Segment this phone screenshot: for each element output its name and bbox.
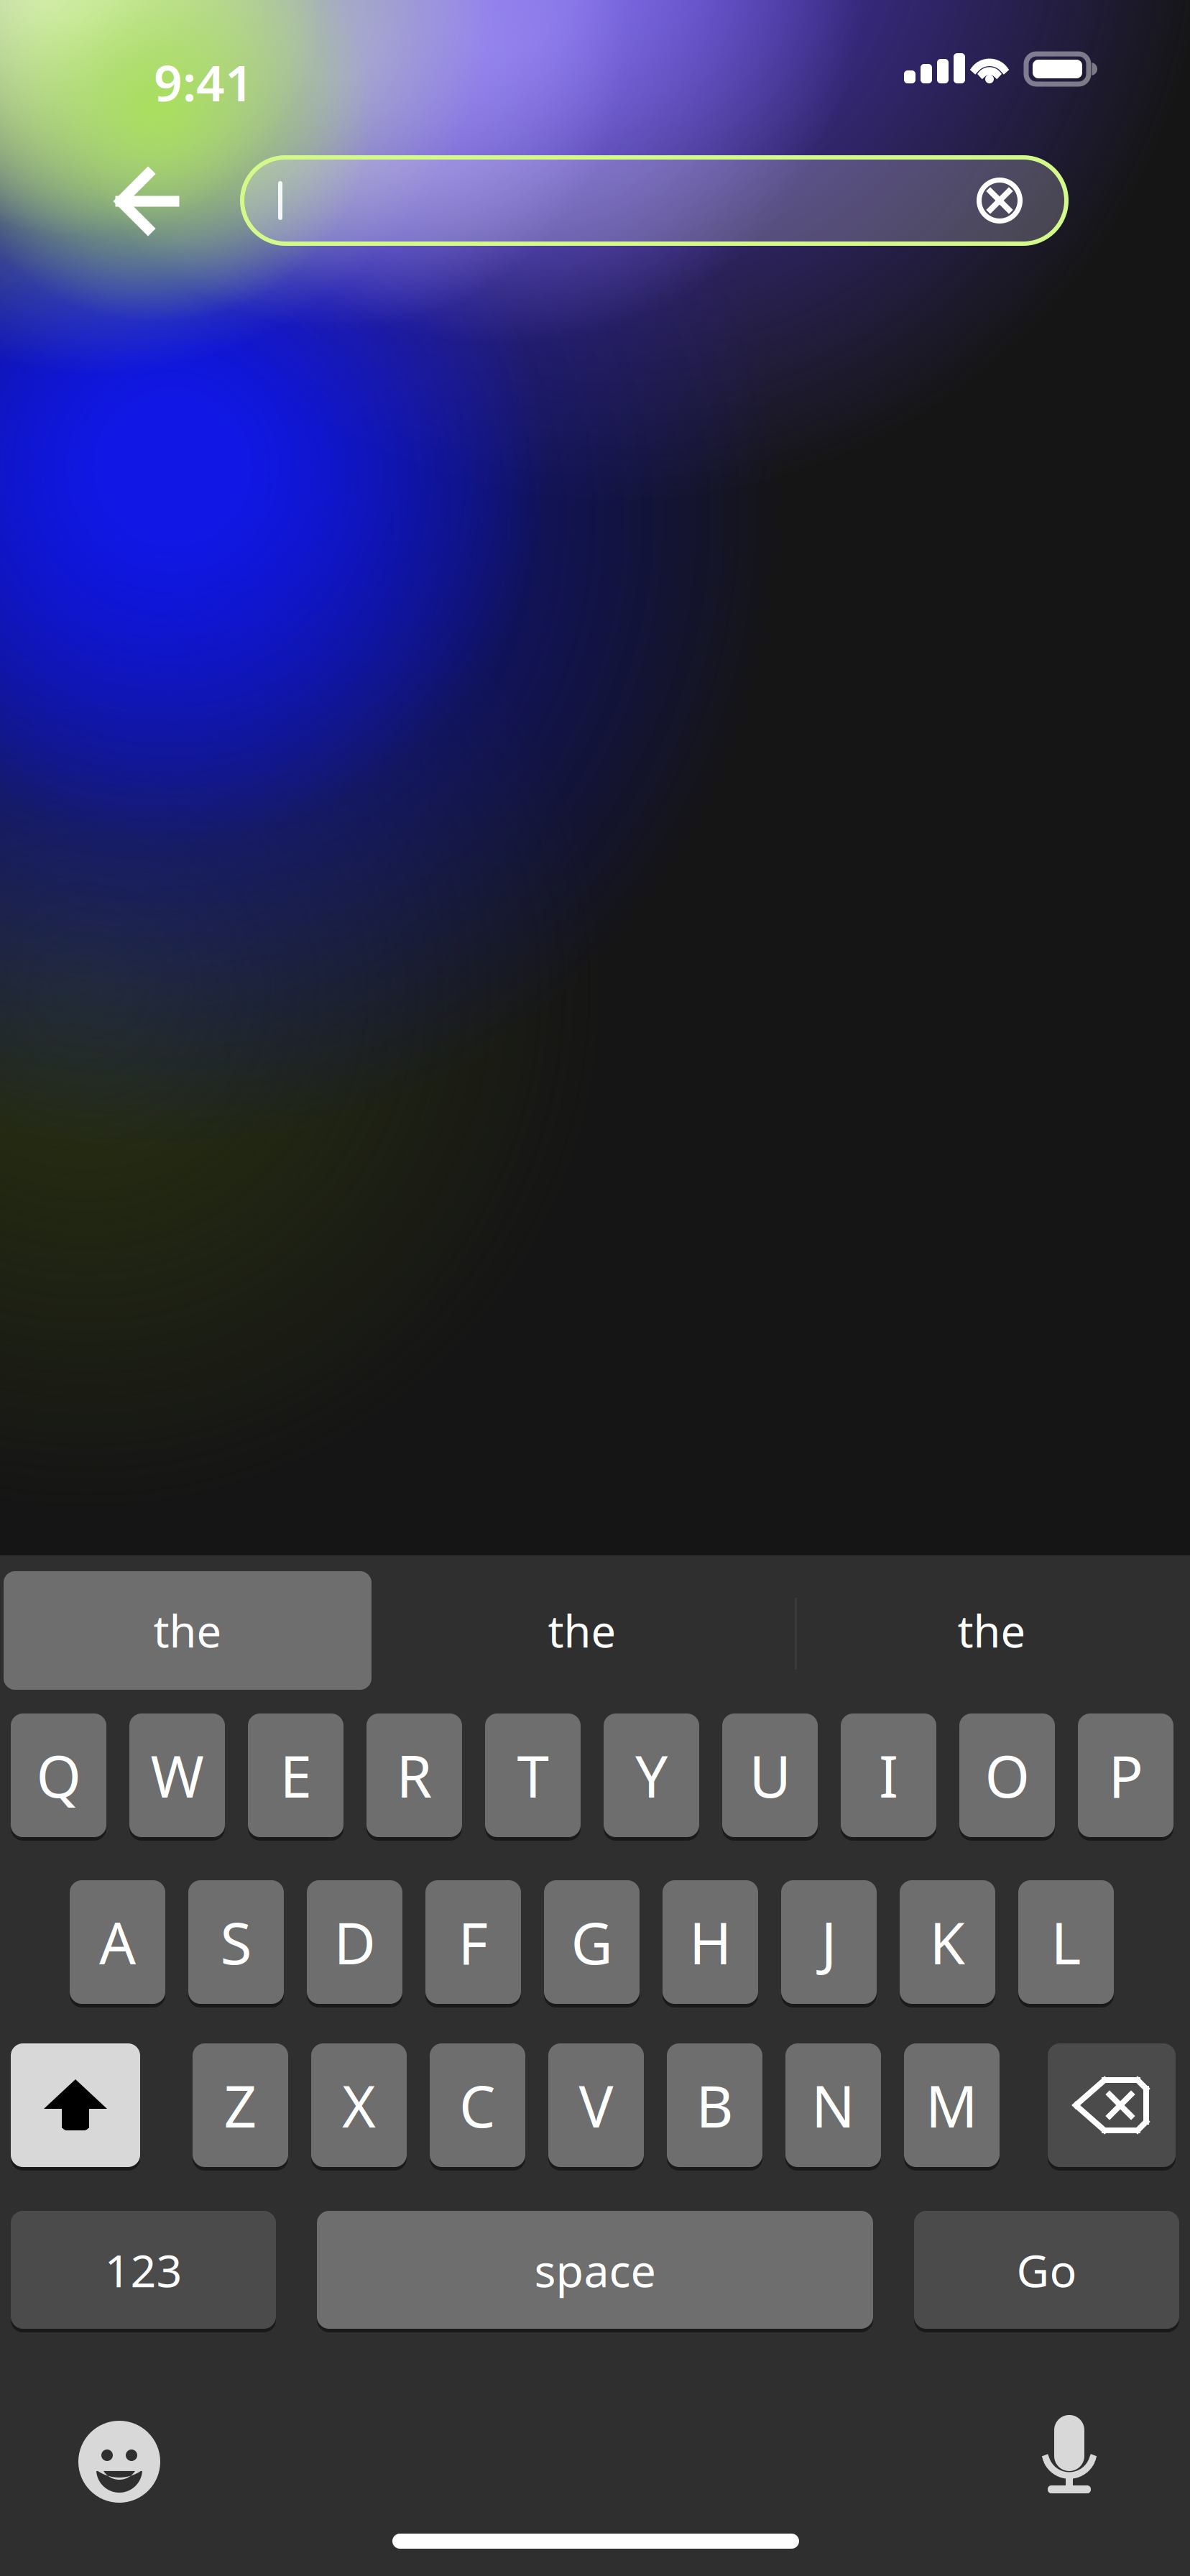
staticText: F [458,1904,488,1980]
button[interactable]: Y [604,1713,699,1837]
button[interactable]: T [485,1713,581,1837]
button[interactable]: Q [11,1713,106,1837]
staticText: 123 [105,2240,182,2300]
button[interactable]: S [188,1880,284,2004]
button[interactable]: I [841,1713,936,1837]
staticText: W [151,1737,204,1813]
button[interactable]: X [311,2043,407,2167]
staticText: S [220,1904,252,1980]
button[interactable]: Back [0,0,101,101]
staticText: N [811,2067,855,2143]
staticText: Q [36,1737,81,1813]
button[interactable]: G [544,1880,640,2004]
button[interactable]: M [904,2043,1000,2167]
button[interactable]: U [722,1713,818,1837]
staticText: H [689,1904,732,1980]
staticText: P [1108,1737,1143,1813]
button[interactable]: Delete [0,0,128,124]
button[interactable]: F [425,1880,521,2004]
button[interactable]: C [430,2043,525,2167]
button[interactable]: the [0,0,388,119]
staticText: the [548,1601,616,1660]
staticText: the [153,1601,222,1660]
button[interactable]: Shift [0,0,129,124]
button[interactable]: space [317,2211,873,2329]
staticText: U [749,1737,791,1813]
button[interactable]: 123 [11,2211,276,2329]
staticText: A [99,1904,136,1980]
button[interactable]: K [900,1880,995,2004]
staticText: X [342,2067,376,2143]
button[interactable]: D [307,1880,402,2004]
staticText: R [396,1737,432,1813]
staticText: 9:41 [154,49,254,115]
staticText: T [517,1737,549,1813]
staticText: V [579,2067,613,2143]
button[interactable]: V [548,2043,644,2167]
button[interactable]: the [0,0,388,119]
button[interactable]: E [248,1713,343,1837]
staticText: J [821,1904,837,1980]
button[interactable]: W [129,1713,225,1837]
staticText: G [571,1904,613,1980]
button[interactable]: N [785,2043,881,2167]
button[interactable]: L [1018,1880,1114,2004]
button[interactable]: P [1078,1713,1173,1837]
button[interactable]: R [366,1713,462,1837]
staticText: E [280,1737,312,1813]
staticText: M [926,2067,978,2143]
button[interactable] [0,0,824,86]
staticText: D [334,1904,375,1980]
button[interactable]: Go [914,2211,1179,2329]
staticText: Go [1016,2240,1077,2300]
staticText: I [879,1737,898,1813]
staticText: the [958,1601,1026,1660]
button[interactable]: the [0,0,368,119]
button[interactable]: Emoji [0,0,82,82]
button[interactable]: Z [193,2043,288,2167]
staticText: C [459,2067,496,2143]
button[interactable]: J [781,1880,877,2004]
staticText: space [534,2240,656,2300]
staticText: B [696,2067,733,2143]
staticText: L [1051,1904,1081,1980]
button[interactable]: Dictation [0,0,79,93]
staticText: O [985,1737,1029,1813]
button[interactable]: O [959,1713,1055,1837]
staticText: K [930,1904,965,1980]
button[interactable]: B [667,2043,762,2167]
staticText: Y [635,1737,668,1813]
button[interactable]: A [70,1880,165,2004]
button[interactable]: H [663,1880,758,2004]
staticText: Z [224,2067,257,2143]
